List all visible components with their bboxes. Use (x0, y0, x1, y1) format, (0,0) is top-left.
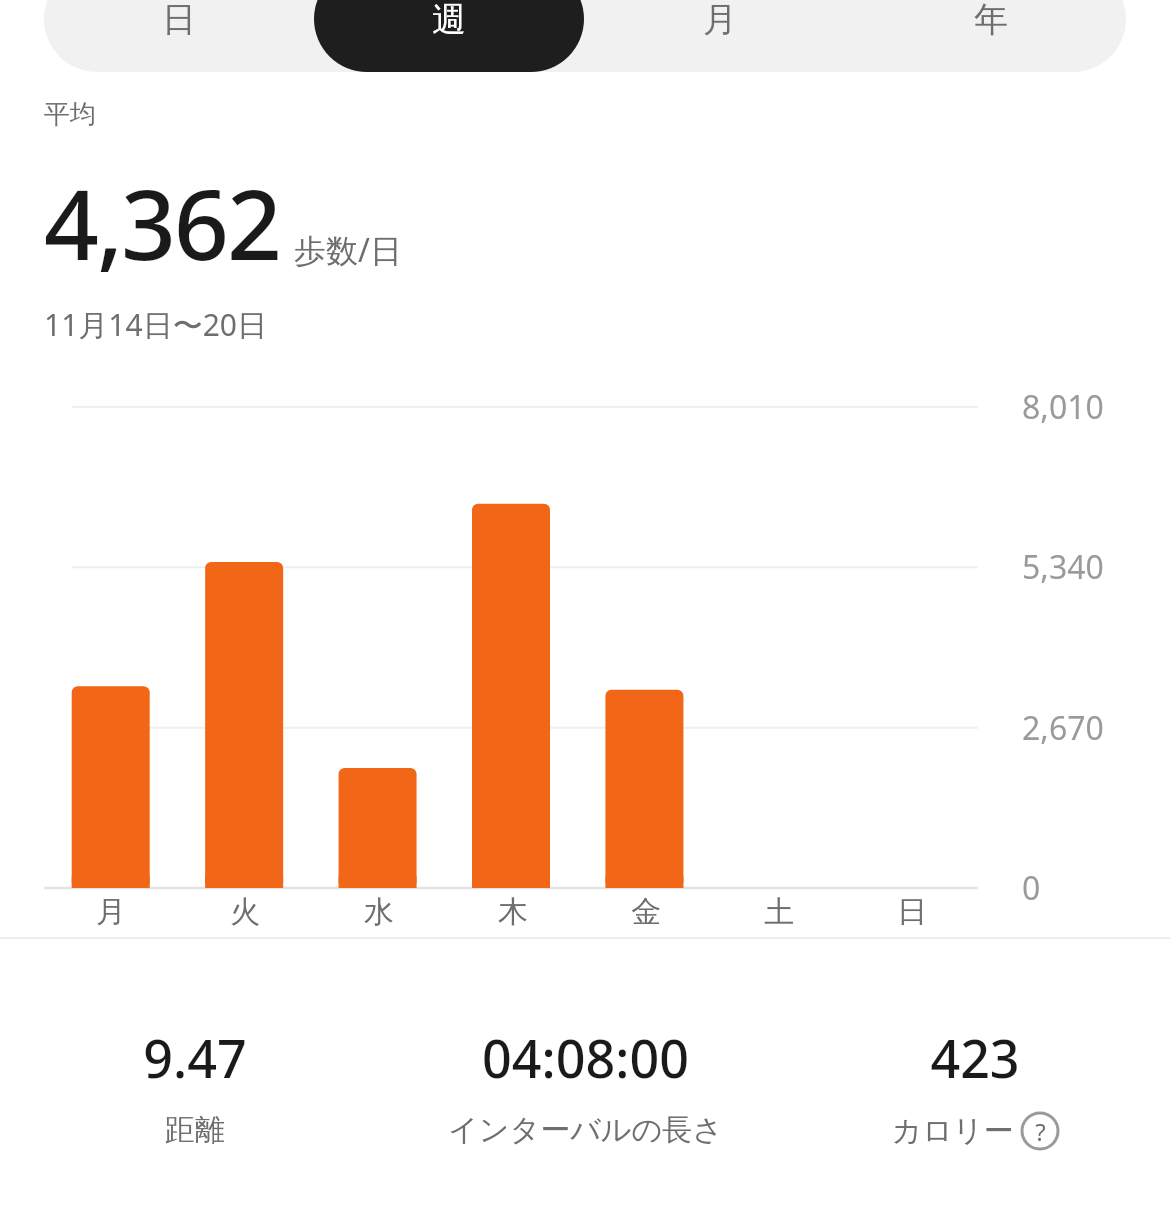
staticText: 日 (897, 893, 927, 931)
button[interactable]: 423 (780, 1022, 1170, 1151)
staticText: 月 (96, 893, 126, 931)
staticText: 年 (974, 0, 1008, 41)
button[interactable]: 月 (584, 0, 855, 72)
staticText: ? (1035, 1115, 1046, 1148)
staticText: 日 (162, 0, 196, 41)
staticText: 歩数/日 (294, 228, 402, 272)
staticText: 金 (631, 893, 661, 931)
staticText: 11月14日〜20日 (44, 304, 267, 345)
staticText: 8,010 (1022, 385, 1104, 429)
staticText: 9.47 (143, 1022, 247, 1093)
staticText: 水 (364, 893, 394, 931)
staticText: カロリー (891, 1112, 1014, 1150)
staticText: 423 (930, 1022, 1020, 1093)
staticText: 木 (498, 893, 528, 931)
staticText: 距離 (165, 1111, 225, 1149)
staticText: 2,670 (1022, 706, 1104, 750)
staticText: 平均 (44, 98, 96, 131)
staticText: 4,362 (44, 157, 280, 288)
staticText: 0 (1022, 866, 1041, 910)
staticText: 04:08:00 (482, 1022, 689, 1093)
staticText: 火 (230, 893, 260, 931)
staticText: 土 (764, 893, 794, 931)
staticText: 5,340 (1022, 545, 1104, 589)
button[interactable]: 04:08:00 (390, 1022, 780, 1149)
staticText: 月 (703, 0, 737, 41)
button[interactable]: 年 (855, 0, 1126, 72)
staticText: 週 (432, 0, 466, 41)
button[interactable]: カロリーについて (1020, 1111, 1060, 1151)
button[interactable]: 日 (44, 0, 314, 72)
staticText: インターバルの長さ (448, 1111, 723, 1149)
button[interactable]: 週 (314, 0, 584, 72)
button[interactable]: 9.47 (0, 1022, 390, 1149)
